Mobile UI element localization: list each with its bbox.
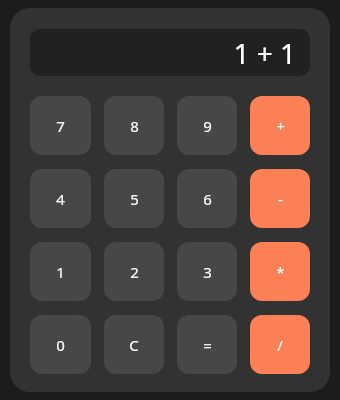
button[interactable]: C: [104, 315, 164, 374]
button[interactable]: *: [250, 242, 310, 301]
button[interactable]: /: [250, 315, 310, 374]
staticText: 9: [203, 116, 212, 136]
staticText: 8: [130, 116, 139, 136]
staticText: +: [276, 116, 285, 136]
button[interactable]: 8: [104, 96, 164, 155]
button[interactable]: 3: [177, 242, 237, 301]
staticText: 1 + 1: [233, 34, 296, 72]
button[interactable]: 4: [30, 169, 91, 228]
staticText: 4: [56, 189, 65, 209]
staticText: 3: [203, 262, 212, 282]
button[interactable]: +: [250, 96, 310, 155]
button[interactable]: 2: [104, 242, 164, 301]
staticText: 1: [56, 262, 65, 282]
button[interactable]: 5: [104, 169, 164, 228]
button[interactable]: 1: [30, 242, 91, 301]
staticText: 7: [56, 116, 65, 136]
staticText: 2: [130, 262, 139, 282]
staticText: *: [276, 262, 285, 282]
button[interactable]: -: [250, 169, 310, 228]
staticText: /: [277, 335, 283, 355]
staticText: =: [203, 335, 212, 355]
staticText: 5: [130, 189, 139, 209]
staticText: -: [278, 189, 283, 209]
button[interactable]: 6: [177, 169, 237, 228]
staticText: C: [129, 335, 139, 355]
staticText: 6: [203, 189, 212, 209]
button[interactable]: 1 + 1: [30, 29, 310, 76]
staticText: 0: [56, 335, 65, 355]
button[interactable]: 0: [30, 315, 91, 374]
button[interactable]: 7: [30, 96, 91, 155]
button[interactable]: =: [177, 315, 237, 374]
button[interactable]: 9: [177, 96, 237, 155]
